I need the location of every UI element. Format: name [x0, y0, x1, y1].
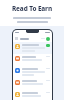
button[interactable]	[13, 54, 52, 66]
button[interactable]	[13, 90, 52, 100]
button[interactable]: Profile	[46, 37, 50, 41]
button[interactable]	[13, 66, 52, 78]
staticText: Read To Earn	[0, 4, 64, 13]
button[interactable]	[13, 78, 52, 90]
button[interactable]	[13, 42, 52, 54]
